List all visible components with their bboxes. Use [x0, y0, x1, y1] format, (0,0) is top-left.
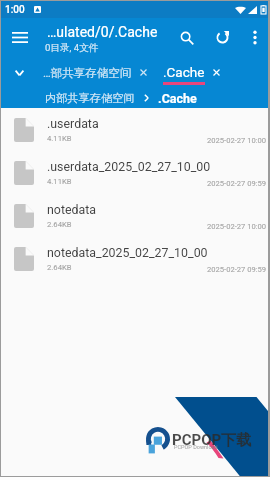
button[interactable]: …部共享存储空间	[43, 57, 147, 88]
staticText: 2025-02-27 10:00	[207, 222, 267, 231]
staticText: 2025-02-27 09:59	[207, 265, 267, 274]
button[interactable]: More options	[240, 18, 270, 57]
staticText: 2025-02-27 10:00	[207, 136, 267, 145]
staticText: …部共享存储空间	[43, 66, 132, 80]
staticText: 2.64KB	[47, 220, 72, 229]
staticText: …ulated/0/.Cache	[47, 24, 158, 40]
staticText: 内部共享存储空间	[45, 91, 135, 105]
staticText: 2025-02-27 09:59	[207, 179, 267, 188]
staticText: PCPOP Download	[174, 444, 218, 450]
button[interactable]: Refresh	[204, 18, 240, 57]
staticText: 4.11KB	[47, 134, 72, 143]
staticText: .userdata_2025_02_27_10_00	[47, 159, 211, 174]
button[interactable]: .userdata	[0, 108, 270, 151]
staticText: .Cache	[158, 91, 197, 106]
staticText: .userdata	[47, 116, 99, 131]
staticText: .Cache	[163, 64, 205, 80]
staticText: notedata	[47, 202, 97, 217]
button[interactable]: Search	[170, 18, 204, 57]
staticText: 4.11KB	[47, 177, 72, 186]
staticText: 1:00	[5, 4, 25, 16]
staticText: notedata_2025_02_27_10_00	[47, 245, 208, 260]
button[interactable]: notedata_2025_02_27_10_00	[0, 237, 270, 280]
button[interactable]: .userdata_2025_02_27_10_00	[0, 151, 270, 194]
button[interactable]: .Cache	[157, 57, 226, 88]
button[interactable]: Show all tabs	[0, 57, 38, 88]
staticText: 0目录, 4文件	[45, 42, 99, 54]
button[interactable]: Navigation menu	[0, 18, 40, 57]
staticText: 2.64KB	[47, 263, 72, 272]
button[interactable]: notedata	[0, 194, 270, 237]
staticText: PCPOP下载	[172, 431, 252, 450]
